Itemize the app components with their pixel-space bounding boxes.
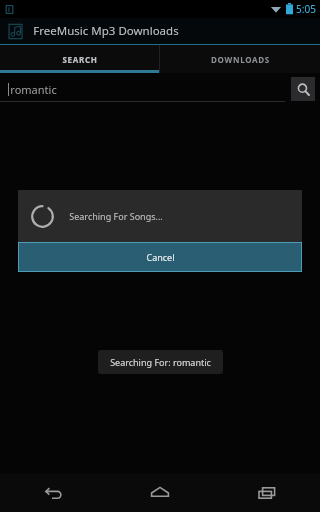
staticText: Searching For: romantic [110,356,211,368]
staticText: DOWNLOADS [211,54,270,65]
staticText: SEARCH [62,54,98,65]
button[interactable]: DOWNLOADS [160,45,320,73]
button[interactable]: Recent apps [213,474,320,512]
staticText: romantic [10,82,57,97]
staticText: FreeMusic Mp3 Downloads [33,23,179,39]
button[interactable]: Home [106,474,213,512]
staticText: 5:05 [296,2,316,16]
staticText: Cancel [146,251,175,263]
button[interactable]: romantic [0,76,285,102]
button[interactable]: Search [291,77,315,101]
button[interactable]: Cancel [18,242,302,272]
staticText: Searching For Songs... [69,210,163,222]
button[interactable]: SEARCH [0,45,159,73]
button[interactable]: Back [0,474,106,512]
